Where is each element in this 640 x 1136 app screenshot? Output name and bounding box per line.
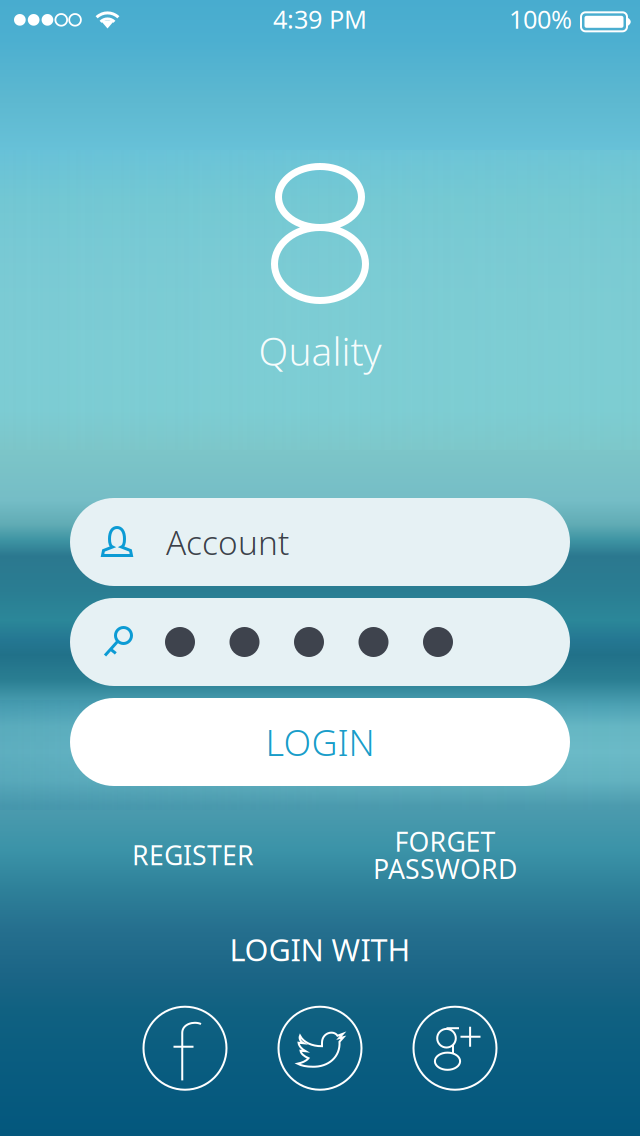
button[interactable]: Account	[70, 498, 570, 586]
button[interactable]: LOGIN	[70, 698, 570, 786]
button[interactable]: Log in with Google Plus	[413, 1007, 496, 1090]
button[interactable]: Log in with Twitter	[278, 1007, 361, 1090]
button[interactable]: Log in with Facebook	[143, 1007, 226, 1090]
staticText: PASSWORD	[373, 851, 517, 886]
staticText: LOGIN	[265, 718, 374, 766]
staticText: 100%	[509, 2, 572, 36]
staticText: Account	[166, 520, 289, 564]
staticText: LOGIN WITH	[229, 929, 410, 970]
button[interactable]: REGISTER	[78, 822, 308, 888]
staticText: REGISTER	[132, 837, 254, 873]
staticText: FORGET	[394, 824, 495, 859]
staticText: Quality	[258, 325, 381, 376]
button[interactable]: FORGET	[308, 822, 582, 888]
staticText: 4:39 PM	[273, 2, 367, 36]
button[interactable]	[70, 598, 570, 686]
